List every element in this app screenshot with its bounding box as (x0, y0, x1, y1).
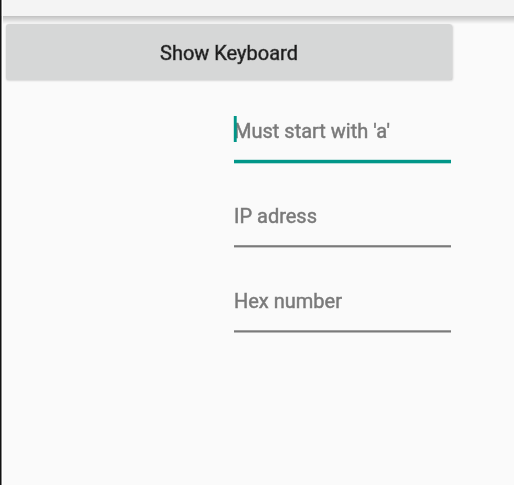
staticText: Hex number (234, 289, 342, 312)
staticText: IP adress (234, 204, 318, 227)
staticText: Show Keyboard (160, 41, 298, 64)
button[interactable]: Show Keyboard (6, 24, 452, 80)
staticText: Show Keyboard (160, 41, 298, 64)
staticText: Must start with 'a' (234, 119, 390, 142)
button[interactable]: Must start with 'a' (232, 105, 451, 166)
button[interactable]: Hex number (232, 275, 451, 336)
button[interactable]: IP adress (232, 190, 451, 251)
staticText: Must start with 'a' (234, 119, 390, 142)
staticText: Hex number (234, 289, 342, 312)
staticText: IP adress (234, 204, 318, 227)
